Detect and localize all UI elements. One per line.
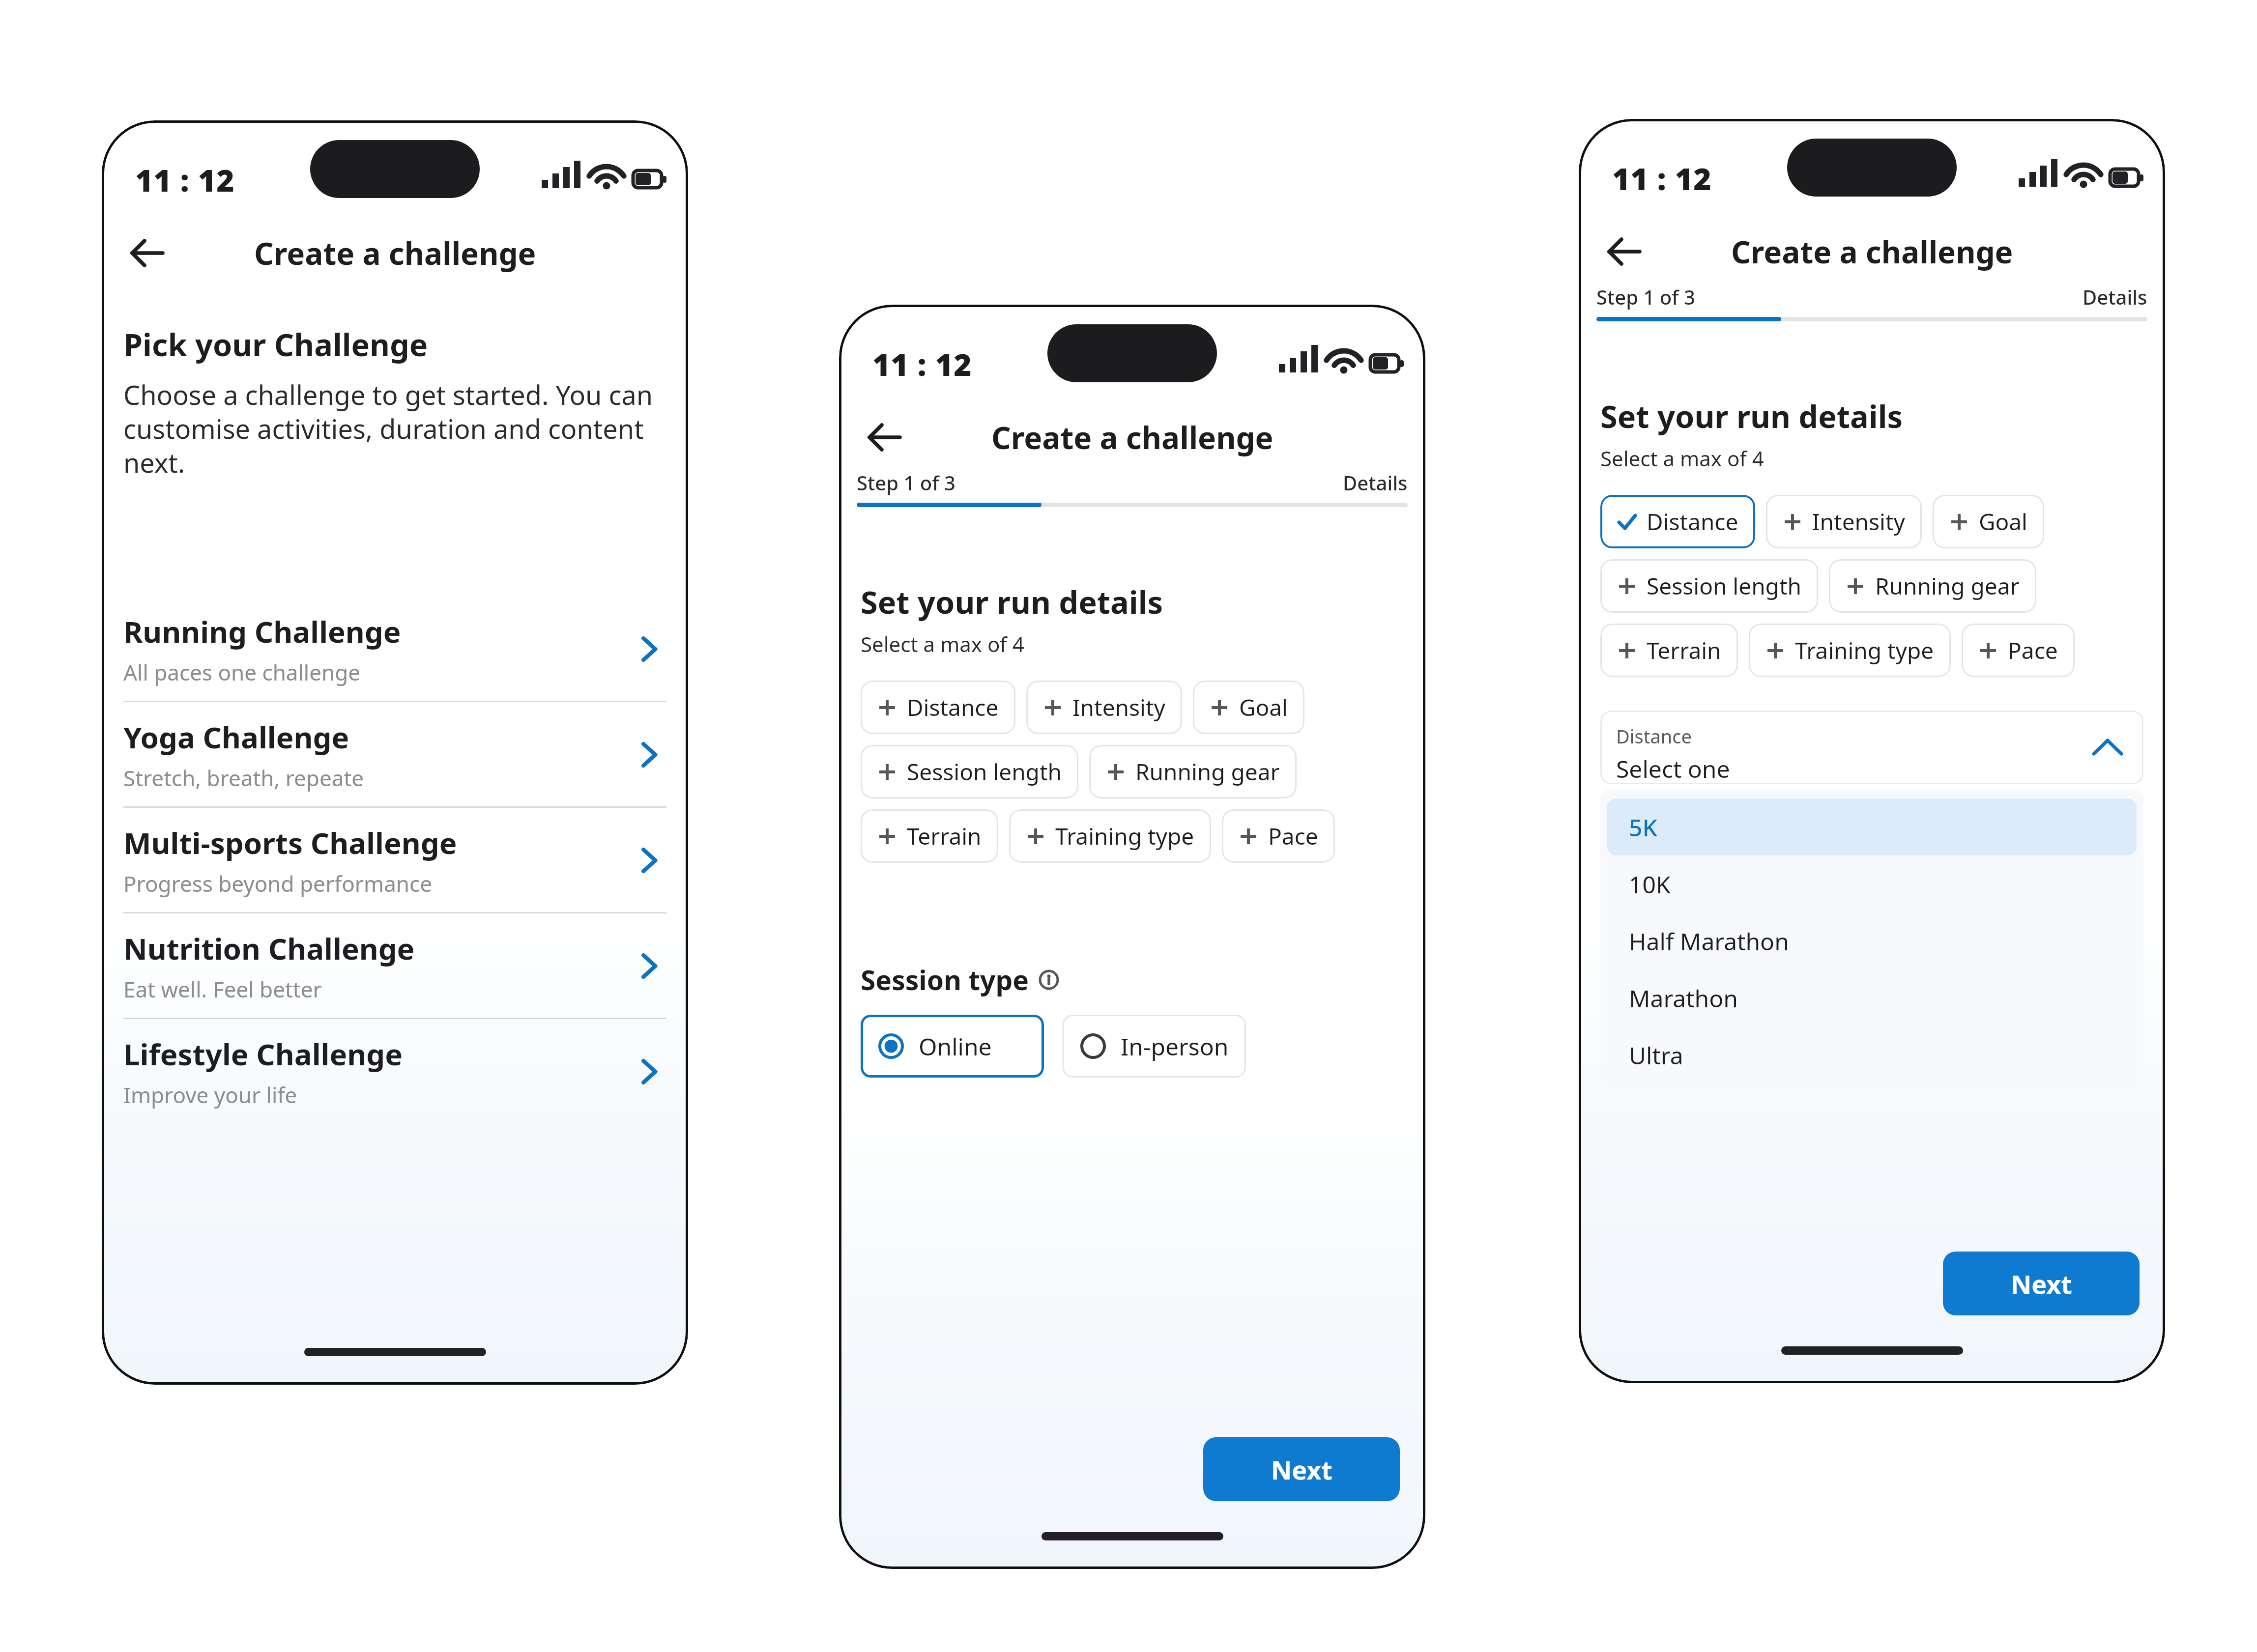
button[interactable]: Session length (861, 745, 1078, 798)
staticText: Running gear (1875, 570, 2020, 601)
button[interactable]: Distance (1600, 495, 1755, 548)
staticText: Create a challenge (991, 417, 1273, 458)
button[interactable]: Running Challenge (123, 597, 666, 701)
staticText: Session length (1647, 570, 1801, 601)
staticText: Lifestyle Challenge (123, 1034, 403, 1074)
staticText: Running gear (1135, 756, 1280, 787)
staticText: Create a challenge (1731, 231, 2013, 272)
staticText: Goal (1979, 506, 2027, 537)
staticText: Set your run details (1600, 395, 1903, 437)
staticText: Goal (1239, 692, 1288, 723)
staticText: Session type (861, 961, 1029, 998)
staticText: Training type (1795, 635, 1934, 666)
staticText: Pick your Challenge (123, 323, 428, 366)
staticText: Terrain (907, 821, 982, 852)
staticText: Progress beyond performance (123, 869, 432, 898)
staticText: Pace (2008, 635, 2058, 666)
button[interactable]: Terrain (861, 809, 998, 863)
button[interactable]: Nutrition Challenge (123, 913, 666, 1018)
button[interactable]: Multi-sports Challenge (123, 808, 666, 912)
staticText: Step 1 of 3 (1596, 284, 1695, 310)
other: Collapse (2091, 731, 2124, 764)
staticText: Distance (907, 692, 999, 723)
staticText: Create a challenge (254, 232, 536, 274)
staticText: 10K (1629, 868, 1671, 900)
staticText: Choose a challenge to get started. You c… (123, 376, 666, 481)
staticText: Online (919, 1030, 992, 1062)
button[interactable]: Distance (861, 681, 1015, 734)
staticText: Training type (1055, 821, 1194, 852)
button[interactable]: Intensity (1766, 495, 1922, 548)
other: Info (1038, 969, 1060, 991)
button[interactable]: Yoga Challenge (123, 702, 666, 806)
staticText: 11 : 12 (872, 343, 972, 385)
staticText: Distance (1616, 723, 1692, 749)
button[interactable]: Back (1602, 229, 1648, 274)
staticText: In-person (1121, 1030, 1229, 1062)
staticText: Select one (1616, 753, 1730, 784)
button[interactable]: Ultra (1607, 1026, 2137, 1083)
staticText: Yoga Challenge (123, 717, 349, 757)
button[interactable]: Half Marathon (1607, 912, 2137, 969)
staticText: 11 : 12 (135, 159, 235, 200)
button[interactable]: Pace (1222, 809, 1335, 863)
staticText: Improve your life (123, 1080, 297, 1110)
staticText: All paces one challenge (123, 657, 361, 687)
button[interactable]: Running gear (1089, 745, 1297, 798)
staticText: Select a max of 4 (861, 630, 1024, 658)
staticText: Running Challenge (123, 611, 401, 652)
button[interactable]: Goal (1193, 681, 1304, 734)
button[interactable]: Next (1203, 1437, 1400, 1501)
button[interactable]: Distance (1600, 711, 2143, 784)
staticText: Details (2083, 284, 2147, 310)
button[interactable]: Intensity (1026, 681, 1182, 734)
button[interactable]: Back (863, 415, 908, 460)
staticText: Stretch, breath, repeate (123, 763, 364, 793)
staticText: Multi-sports Challenge (123, 823, 457, 863)
button[interactable]: Terrain (1600, 624, 1738, 677)
staticText: Terrain (1647, 635, 1721, 666)
staticText: Half Marathon (1629, 925, 1789, 957)
staticText: Pace (1268, 821, 1318, 852)
button[interactable]: Running gear (1829, 559, 2036, 613)
staticText: Session length (907, 756, 1062, 787)
staticText: Step 1 of 3 (857, 469, 955, 496)
button[interactable]: Training type (1749, 624, 1951, 677)
staticText: Intensity (1812, 506, 1905, 537)
staticText: 5K (1629, 811, 1657, 843)
staticText: Eat well. Feel better (123, 974, 322, 1004)
button[interactable]: In-person (1063, 1015, 1246, 1078)
button[interactable]: Next (1943, 1252, 2140, 1315)
button[interactable]: Goal (1933, 495, 2044, 548)
staticText: Select a max of 4 (1600, 444, 1764, 472)
staticText: Set your run details (861, 581, 1163, 623)
staticText: Next (1271, 1452, 1332, 1487)
button[interactable]: Marathon (1607, 969, 2137, 1026)
staticText: Next (2011, 1266, 2072, 1301)
button[interactable]: Pace (1962, 624, 2075, 677)
button[interactable]: 5K (1607, 798, 2137, 855)
staticText: Distance (1647, 506, 1738, 537)
button[interactable]: Training type (1009, 809, 1211, 863)
staticText: Intensity (1072, 692, 1165, 723)
staticText: Marathon (1629, 982, 1738, 1014)
button[interactable]: Session length (1600, 559, 1818, 613)
staticText: Nutrition Challenge (123, 928, 415, 968)
button[interactable]: Lifestyle Challenge (123, 1019, 666, 1123)
staticText: 11 : 12 (1612, 158, 1712, 199)
button[interactable]: Online (861, 1015, 1044, 1078)
staticText: Details (1343, 469, 1408, 496)
button[interactable]: 10K (1607, 855, 2137, 912)
staticText: Ultra (1629, 1039, 1683, 1071)
button[interactable]: Back (125, 230, 171, 276)
